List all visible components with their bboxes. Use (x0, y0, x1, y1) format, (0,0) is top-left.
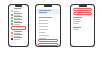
button[interactable] (38, 43, 58, 46)
button[interactable] (73, 12, 92, 15)
button[interactable] (11, 16, 26, 19)
button[interactable] (11, 37, 26, 40)
button[interactable] (73, 8, 92, 11)
button[interactable] (11, 34, 26, 37)
button[interactable] (11, 26, 26, 30)
button[interactable] (11, 19, 26, 22)
button[interactable] (38, 39, 58, 42)
button[interactable] (11, 13, 26, 16)
button[interactable] (11, 31, 26, 34)
button[interactable] (11, 22, 26, 25)
